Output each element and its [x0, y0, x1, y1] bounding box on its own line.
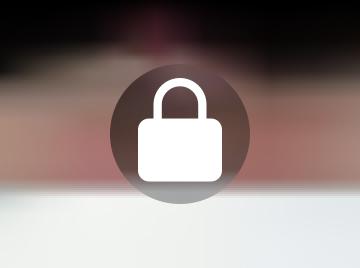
button[interactable]: Photo locked	[110, 64, 250, 204]
